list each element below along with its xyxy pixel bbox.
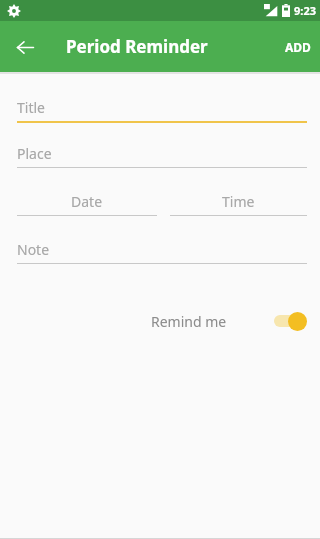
button[interactable]: Remind me toggle [271, 310, 307, 332]
staticText: Period Reminder [66, 35, 208, 58]
button[interactable]: Note [0, 238, 320, 264]
staticText: Date [71, 192, 103, 211]
staticText: Remind me [151, 312, 227, 331]
button[interactable]: Time [160, 190, 320, 216]
button[interactable]: Back [10, 32, 40, 62]
button[interactable]: ADD [276, 29, 320, 65]
staticText: ADD [285, 39, 311, 55]
staticText: Time [222, 192, 255, 211]
staticText: Title [17, 98, 45, 117]
button[interactable]: Date [0, 190, 160, 216]
button[interactable]: Place [0, 142, 320, 168]
button[interactable]: Remind me [0, 310, 320, 332]
staticText: Place [17, 144, 52, 163]
button[interactable]: Title [0, 96, 320, 123]
staticText: 9:23 [294, 3, 316, 18]
staticText: Note [17, 240, 50, 259]
